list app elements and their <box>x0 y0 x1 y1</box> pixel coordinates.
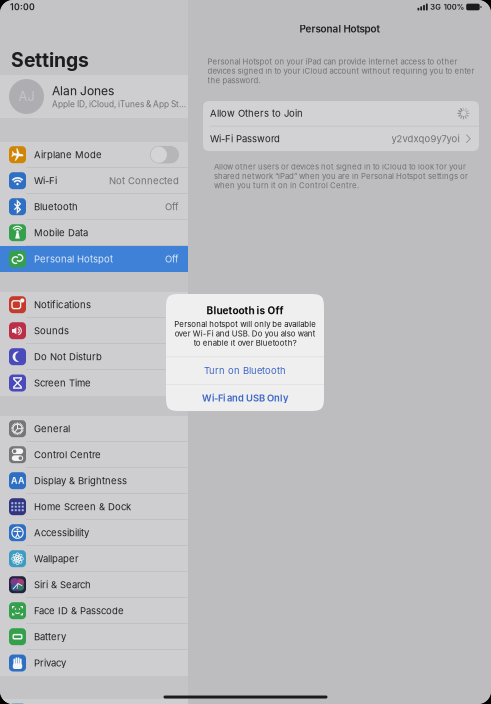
staticText: Personal Hotspot on your iPad can provid… <box>207 57 474 85</box>
staticText: AA <box>11 475 24 486</box>
button[interactable]: Turn on Bluetooth <box>166 357 324 384</box>
button[interactable]: Home Screen & Dock <box>0 494 188 520</box>
staticText: Display & Brightness <box>34 475 127 486</box>
button[interactable]: Wi-Fi and USB Only <box>166 385 324 411</box>
staticText: Allow Others to Join <box>210 108 303 119</box>
button[interactable]: Battery <box>0 624 188 650</box>
staticText: Apple ID, iCloud, iTunes & App St… <box>52 99 186 109</box>
staticText: Wallpaper <box>34 553 79 564</box>
staticText: Personal Hotspot <box>299 23 379 35</box>
staticText: Airplane Mode <box>34 149 102 160</box>
staticText: Accessibility <box>34 527 89 538</box>
button[interactable]: Screen Time <box>0 370 188 396</box>
staticText: Home Screen & Dock <box>34 501 131 512</box>
staticText: Battery <box>34 631 66 642</box>
button[interactable]: Privacy <box>0 650 188 676</box>
staticText: 10:00 <box>10 2 35 12</box>
button[interactable]: Face ID & Passcode <box>0 598 188 624</box>
staticText: Personal hotspot will only be available … <box>174 320 316 348</box>
button[interactable]: Sounds <box>0 318 188 344</box>
staticText: Turn on Bluetooth <box>204 365 286 376</box>
staticText: Not Connected <box>109 175 179 186</box>
button[interactable]: General <box>0 416 188 442</box>
staticText: Personal Hotspot <box>34 253 113 265</box>
staticText: Screen Time <box>34 377 91 389</box>
button[interactable]: Wallpaper <box>0 546 188 572</box>
button[interactable]: Personal Hotspot <box>0 246 188 272</box>
button[interactable]: Siri & Search <box>0 572 188 598</box>
button[interactable]: Control Centre <box>0 442 188 468</box>
button[interactable]: Accessibility <box>0 520 188 546</box>
staticText: Settings <box>11 48 89 72</box>
staticText: Bluetooth is Off <box>206 304 283 317</box>
staticText: 3G <box>430 2 441 11</box>
staticText: Notifications <box>34 299 91 310</box>
button[interactable]: Airplane Mode <box>0 142 188 168</box>
staticText: 100% <box>444 2 464 11</box>
staticText: Sounds <box>34 325 69 336</box>
staticText: Mobile Data <box>34 227 88 238</box>
staticText: y2vdxqo9y7yoi <box>392 133 460 144</box>
staticText: Off <box>165 253 179 265</box>
staticText: Alan Jones <box>52 84 114 98</box>
button[interactable]: AJ <box>0 75 188 118</box>
staticText: Allow other users or devices not signed … <box>214 162 468 190</box>
staticText: Privacy <box>34 657 66 669</box>
button[interactable]: Notifications <box>0 292 188 318</box>
button[interactable]: Wi-Fi <box>0 168 188 194</box>
staticText: Face ID & Passcode <box>34 605 124 616</box>
staticText: Off <box>165 201 179 212</box>
button[interactable]: Do Not Disturb <box>0 344 188 370</box>
staticText: Siri & Search <box>34 579 91 590</box>
staticText: Bluetooth <box>34 201 78 212</box>
button[interactable]: Bluetooth <box>0 194 188 220</box>
staticText: Do Not Disturb <box>34 351 102 362</box>
staticText: General <box>34 423 70 434</box>
staticText: Control Centre <box>34 449 101 460</box>
button[interactable]: Mobile Data <box>0 220 188 246</box>
staticText: Wi-Fi and USB Only <box>202 392 288 404</box>
button[interactable]: AA <box>0 468 188 494</box>
staticText: AJ <box>18 89 34 104</box>
staticText: Wi-Fi <box>34 175 57 186</box>
staticText: Wi-Fi Password <box>210 133 280 144</box>
